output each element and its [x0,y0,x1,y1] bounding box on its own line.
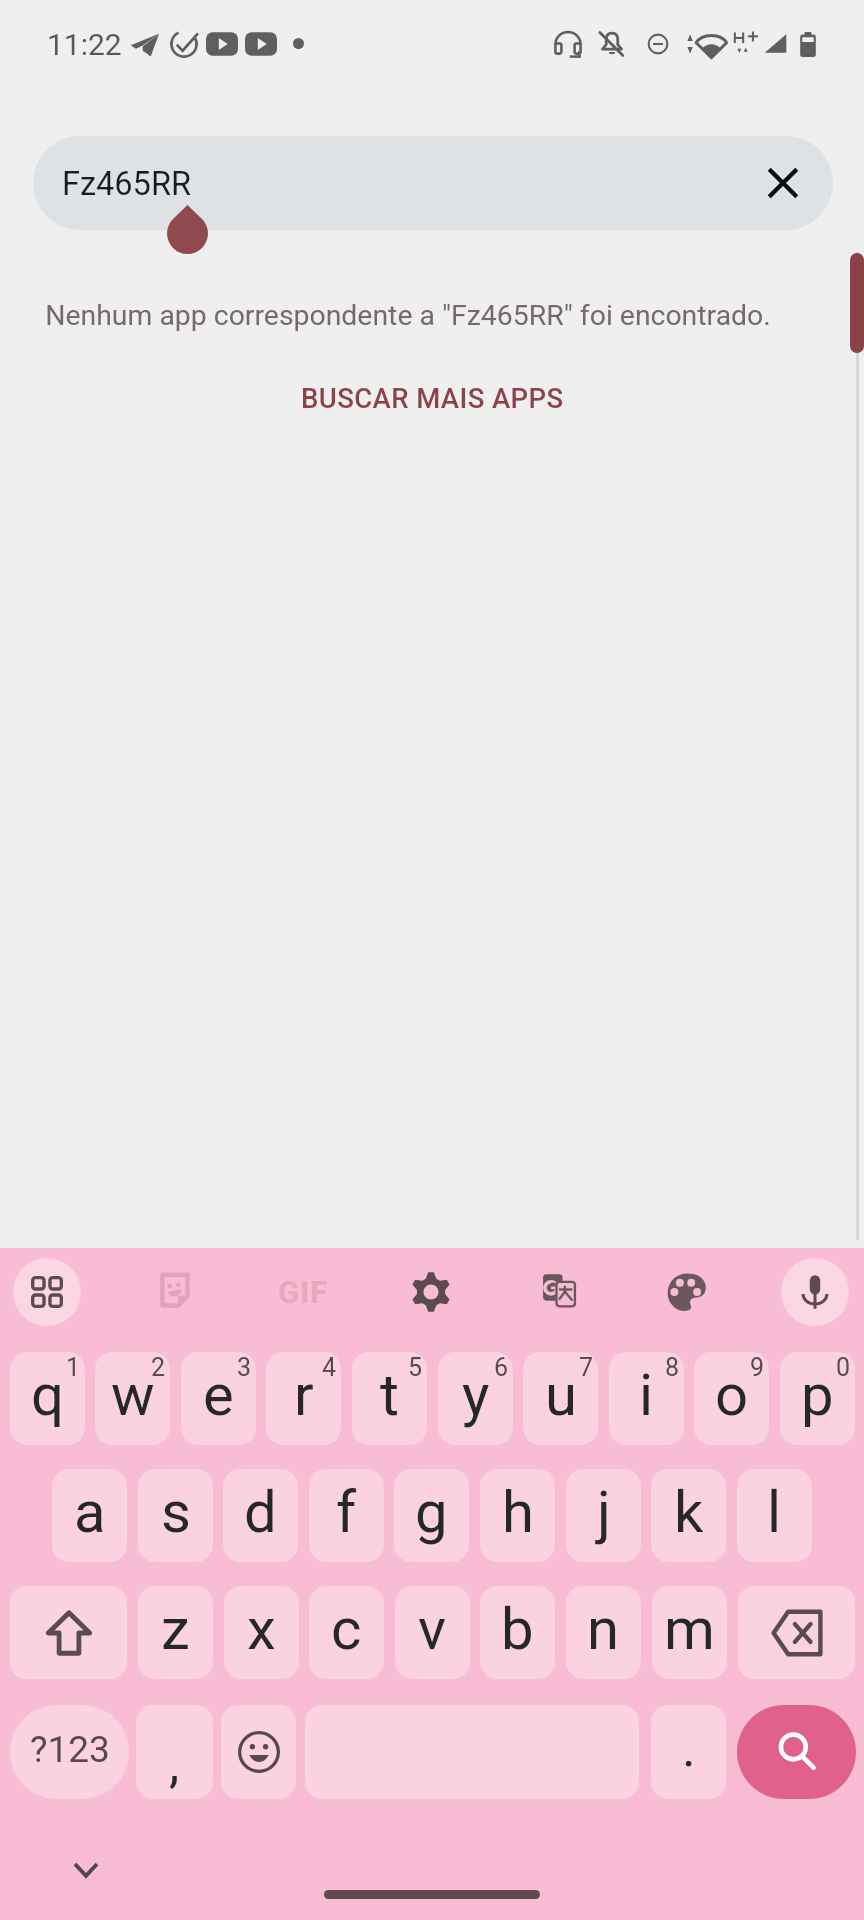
staticText: x [247,1595,276,1663]
button[interactable]: Keyboard layouts [13,1258,81,1326]
button[interactable]: Voice input [781,1258,849,1326]
staticText: h [502,1478,534,1546]
button[interactable]: Emoji [221,1705,296,1799]
staticText: 4 [322,1353,337,1382]
button[interactable]: s [138,1469,213,1562]
staticText: 11:22 [47,27,122,62]
button[interactable]: r [266,1352,341,1445]
staticText: ?123 [30,1728,110,1771]
button[interactable]: Hide keyboard [62,1847,110,1895]
staticText: , [169,1734,180,1795]
staticText: 5 [408,1353,423,1382]
button[interactable]: b [480,1586,555,1679]
button[interactable]: Search [737,1705,856,1799]
button[interactable]: w [95,1352,170,1445]
button[interactable]: c [309,1586,384,1679]
staticText: . [682,1718,696,1779]
staticText: BUSCAR MAIS APPS [301,382,564,414]
staticText: 6 [494,1353,509,1382]
button[interactable]: p [780,1352,855,1445]
staticText: w [111,1361,155,1429]
button[interactable]: Settings [397,1258,465,1326]
button[interactable]: m [652,1586,727,1679]
staticText: q [31,1361,64,1429]
staticText: c [331,1595,362,1663]
staticText: GIF [278,1274,329,1310]
staticText: g [415,1478,448,1546]
button[interactable]: z [138,1586,213,1679]
button[interactable]: q [10,1352,85,1445]
button[interactable]: Fz465RR [33,136,833,230]
staticText: 9 [750,1353,765,1382]
staticText: s [161,1478,191,1546]
staticText: m [664,1595,715,1663]
button[interactable]: Themes [653,1258,721,1326]
staticText: n [587,1595,620,1663]
button[interactable]: k [651,1469,726,1562]
staticText: j [597,1478,611,1546]
staticText: 0 [836,1353,851,1382]
button[interactable]: i [609,1352,684,1445]
staticText: 3 [237,1353,252,1382]
staticText: l [767,1478,782,1546]
button[interactable]: f [309,1469,384,1562]
button[interactable]: Backspace [738,1586,855,1679]
staticText: a [74,1478,106,1546]
staticText: z [161,1595,190,1663]
button[interactable]: BUSCAR MAIS APPS [277,370,588,426]
button[interactable]: o [694,1352,769,1445]
button[interactable]: u [523,1352,598,1445]
staticText: 7 [579,1353,594,1382]
staticText: u [545,1361,577,1429]
staticText: p [801,1361,834,1429]
button[interactable]: n [566,1586,641,1679]
staticText: b [501,1595,534,1663]
button[interactable]: Translate [525,1258,593,1326]
staticText: i [639,1361,654,1429]
button[interactable]: v [395,1586,470,1679]
staticText: o [715,1361,749,1429]
button[interactable]: Clear search [755,155,811,211]
staticText: Fz465RR [62,165,191,203]
button[interactable]: j [566,1469,641,1562]
button[interactable]: , [136,1705,213,1799]
button[interactable]: y [438,1352,513,1445]
button[interactable]: Stickers [141,1258,209,1326]
button[interactable]: Shift [10,1586,127,1679]
staticText: t [380,1361,399,1429]
staticText: Nenhum app correspondente a "Fz465RR" fo… [45,299,771,332]
button[interactable]: g [394,1469,469,1562]
button[interactable]: h [480,1469,555,1562]
staticText: y [462,1361,490,1429]
button[interactable]: d [223,1469,298,1562]
staticText: 2 [151,1353,166,1382]
button[interactable]: t [352,1352,427,1445]
staticText: 1 [66,1353,81,1382]
staticText: 8 [665,1353,680,1382]
button[interactable]: . [651,1705,726,1799]
staticText: v [418,1595,447,1663]
button[interactable]: a [52,1469,127,1562]
button[interactable]: GIF [269,1258,337,1326]
staticText: r [294,1361,314,1429]
staticText: d [244,1478,277,1546]
staticText: f [336,1478,357,1546]
button[interactable]: e [181,1352,256,1445]
button[interactable]: ?123 [10,1705,129,1799]
button[interactable]: x [224,1586,299,1679]
staticText: k [674,1478,704,1546]
button[interactable]: l [737,1469,812,1562]
staticText: e [203,1361,234,1429]
